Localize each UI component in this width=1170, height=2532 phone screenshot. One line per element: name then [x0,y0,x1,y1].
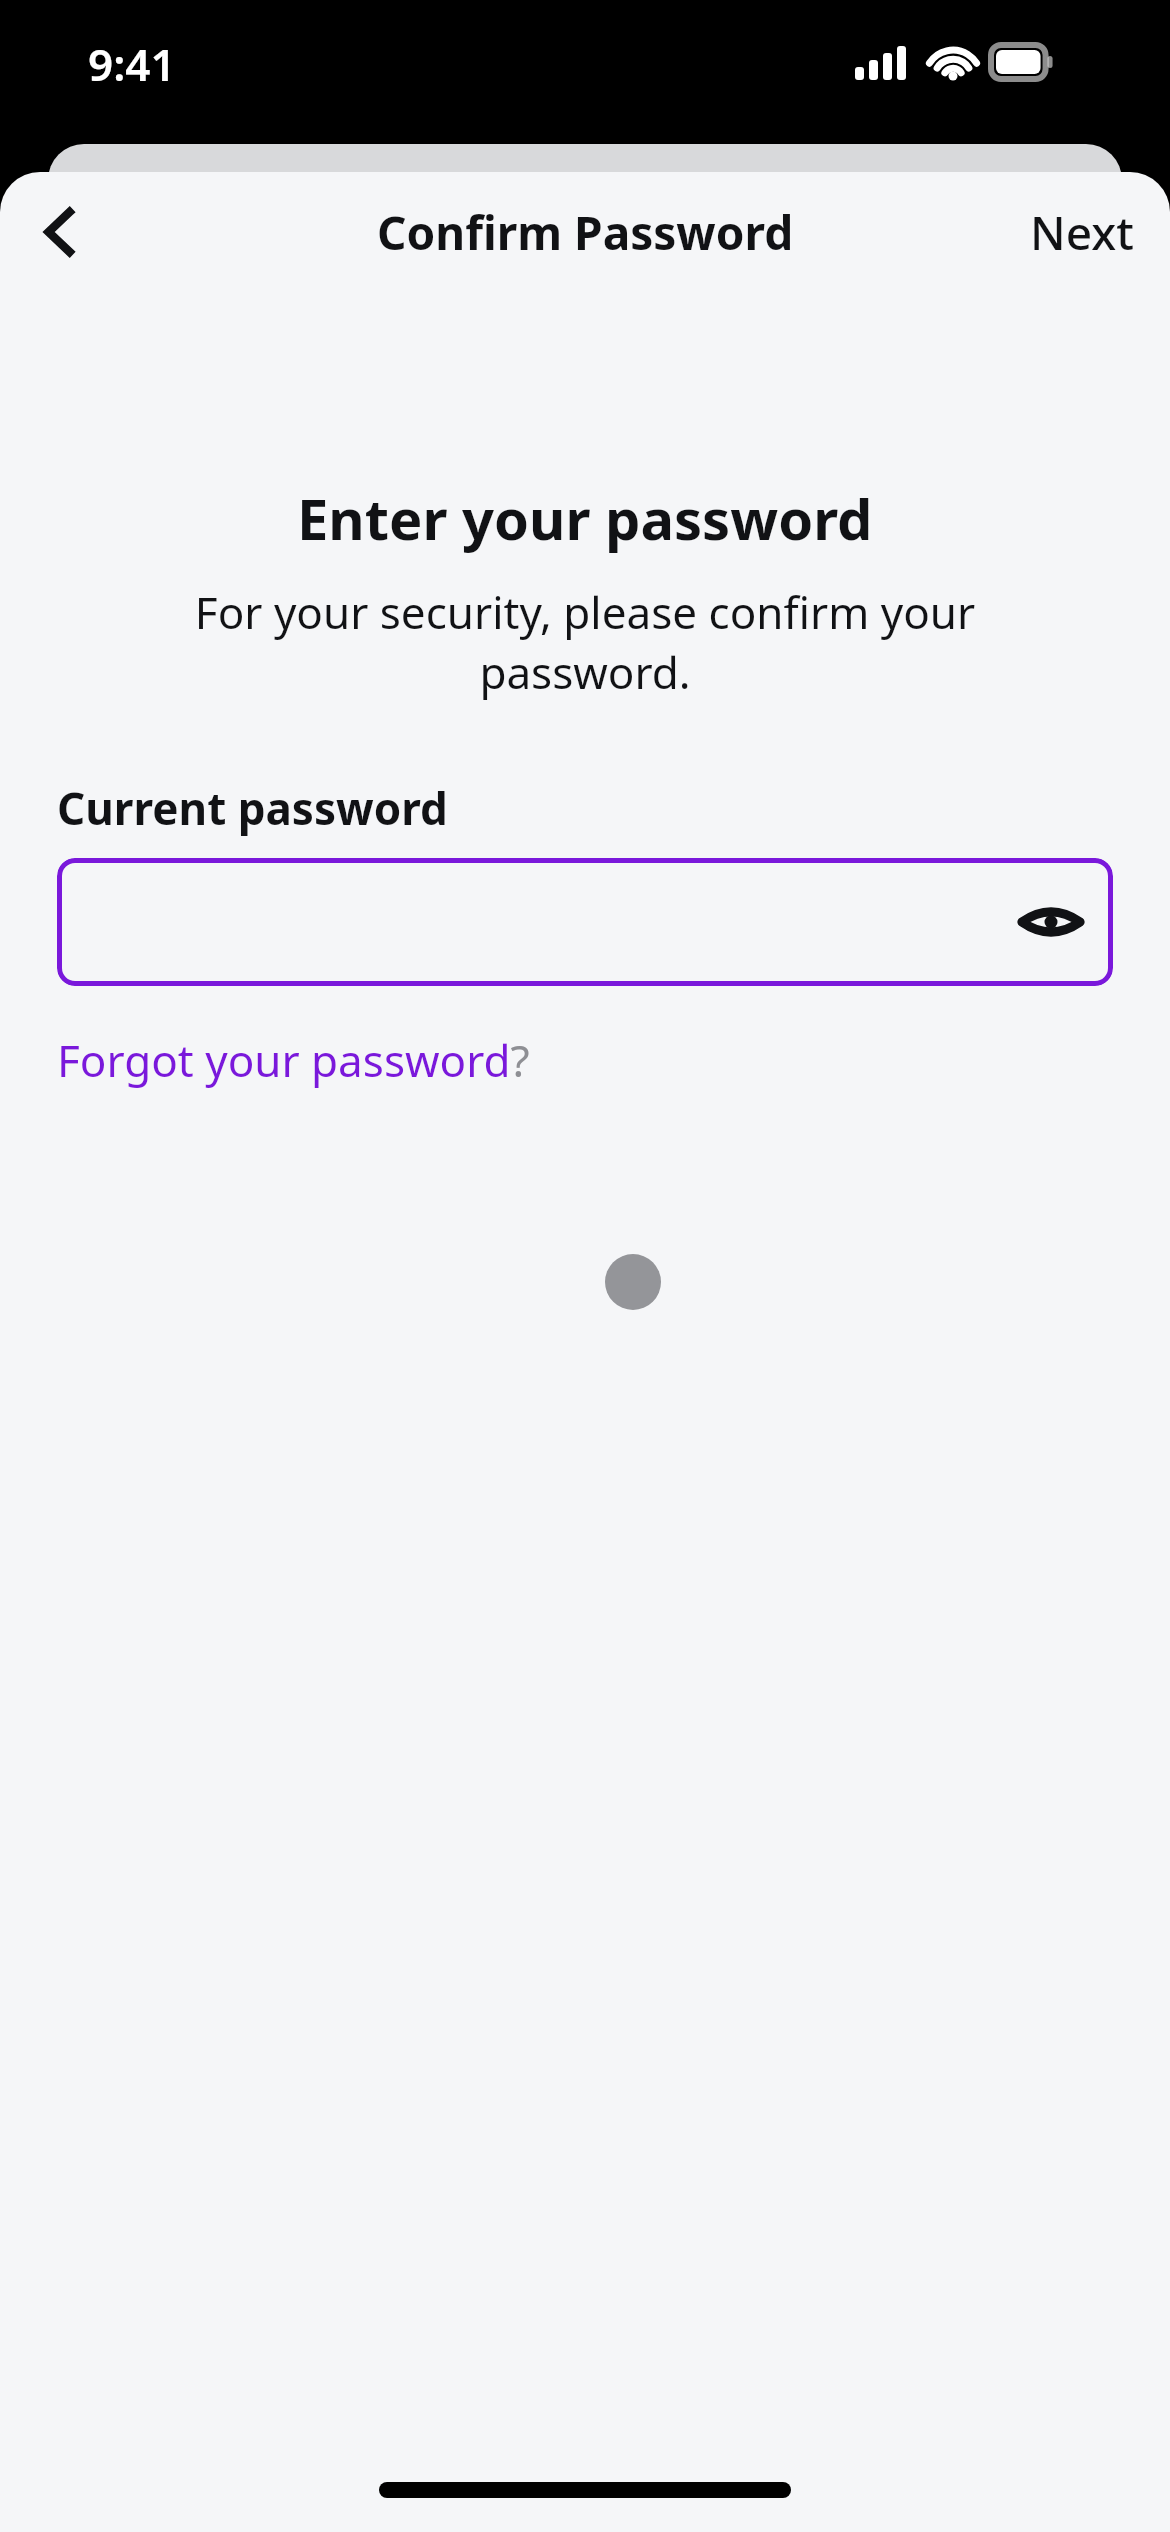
staticText: Enter your password [297,480,873,556]
staticText: Next [1030,201,1134,264]
staticText: Forgot your password? [57,1030,530,1090]
staticText: Current password [57,778,448,838]
button[interactable]: Show password [1007,878,1095,966]
button[interactable]: Forgot your password? [57,1030,530,1090]
staticText: Confirm Password [377,201,794,264]
staticText: For your security, please confirm your p… [140,582,1030,702]
button[interactable]: Show password [57,858,1113,986]
button[interactable]: Next [994,179,1170,286]
button[interactable]: Back [18,190,102,274]
staticText: 9:41 [88,34,176,94]
